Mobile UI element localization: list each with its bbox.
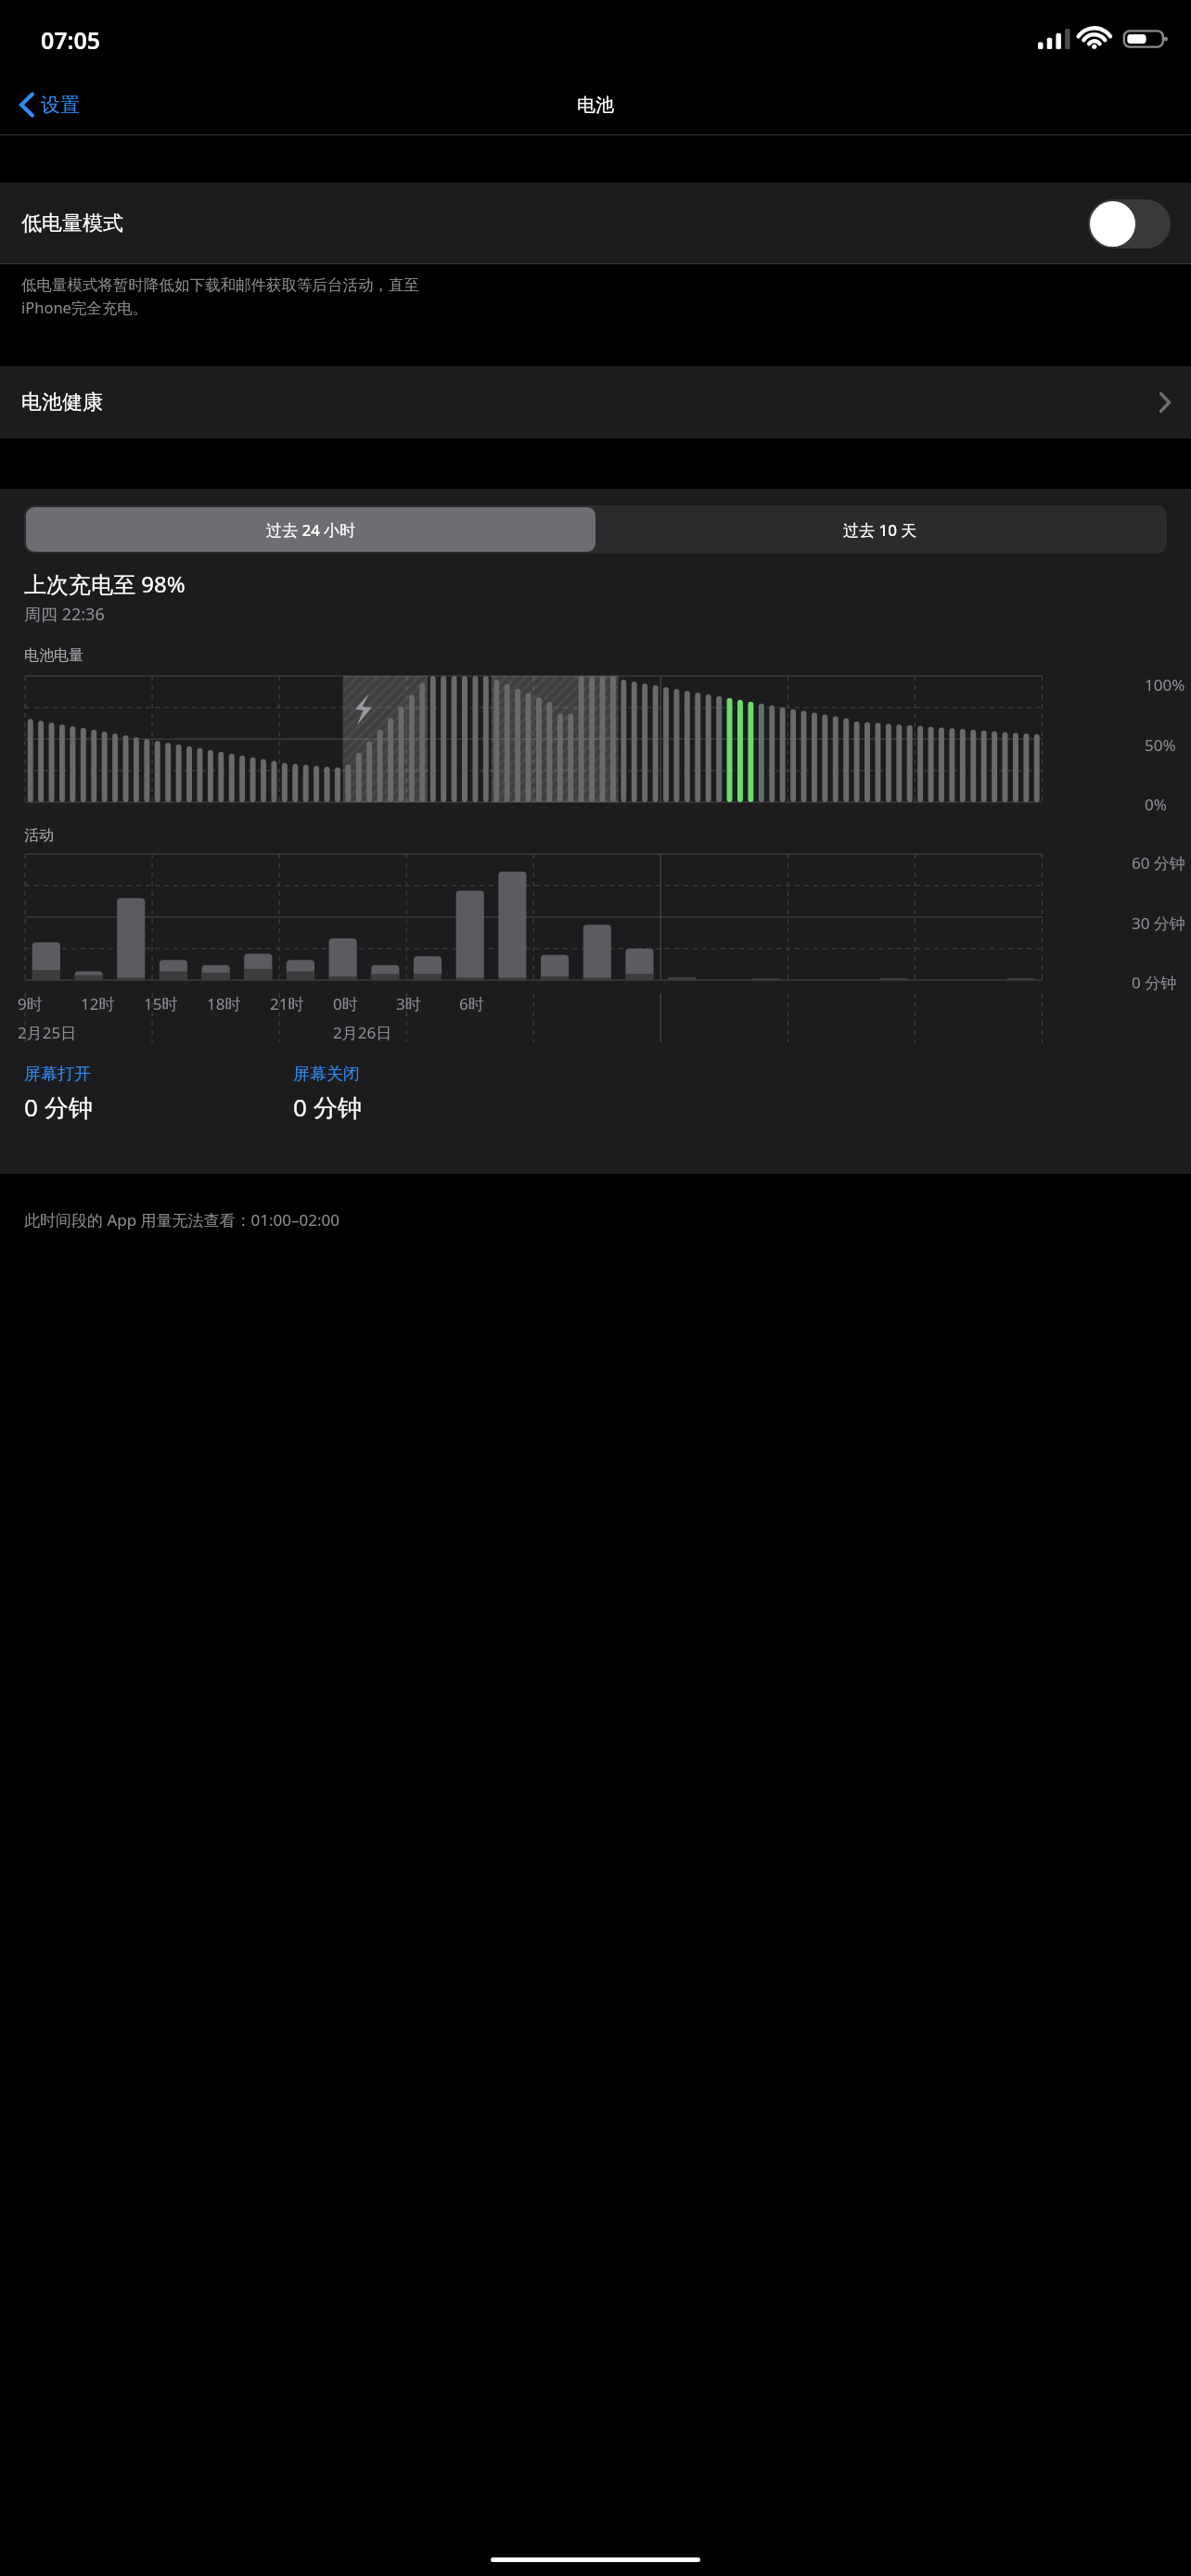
- staticText: 2月26日: [333, 1022, 392, 1043]
- staticText: 6时: [459, 993, 484, 1014]
- staticText: 50%: [1145, 734, 1176, 756]
- staticText: 设置: [41, 93, 80, 117]
- staticText: 21时: [270, 993, 304, 1014]
- button[interactable]: 电池健康: [0, 366, 1191, 439]
- staticText: 07:05: [41, 24, 101, 56]
- staticText: 过去 24 小时: [266, 519, 356, 541]
- staticText: 低电量模式将暂时降低如下载和邮件获取等后台活动，直至 iPhone完全充电。: [21, 275, 419, 318]
- staticText: 0 分钟: [1132, 972, 1177, 993]
- staticText: 电池: [577, 94, 614, 117]
- staticText: 0 分钟: [24, 1090, 93, 1124]
- staticText: 3时: [396, 993, 421, 1014]
- staticText: 低电量模式: [21, 210, 123, 236]
- staticText: 12时: [81, 993, 115, 1014]
- button[interactable]: 低电量模式: [0, 183, 1191, 264]
- button[interactable]: 过去 10 天: [595, 507, 1165, 552]
- staticText: 18时: [207, 993, 241, 1014]
- staticText: 活动: [24, 826, 54, 845]
- staticText: 0%: [1145, 794, 1167, 815]
- button[interactable]: 过去 24 小时: [26, 507, 595, 552]
- button[interactable]: 设置: [0, 85, 93, 124]
- staticText: 2月25日: [18, 1022, 77, 1043]
- staticText: 上次充电至 98%: [24, 568, 186, 599]
- staticText: 周四 22:36: [24, 603, 105, 626]
- staticText: 30 分钟: [1132, 912, 1185, 934]
- staticText: 100%: [1145, 674, 1185, 695]
- staticText: 60 分钟: [1132, 852, 1185, 874]
- staticText: 9时: [18, 993, 43, 1014]
- staticText: 此时间段的 App 用量无法查看：01:00–02:00: [24, 1209, 340, 1231]
- staticText: 0时: [333, 993, 358, 1014]
- staticText: 过去 10 天: [843, 519, 917, 541]
- staticText: 屏幕关闭: [293, 1064, 360, 1085]
- staticText: 0 分钟: [293, 1090, 362, 1124]
- staticText: 电池健康: [21, 389, 103, 415]
- other: 电池健康: [1159, 392, 1171, 413]
- staticText: 电池电量: [24, 646, 83, 665]
- staticText: 屏幕打开: [24, 1064, 91, 1085]
- staticText: 15时: [144, 993, 178, 1014]
